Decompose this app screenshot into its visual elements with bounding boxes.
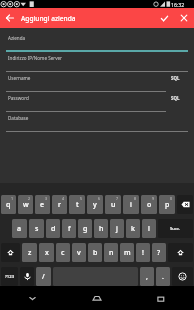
staticText: n [109, 248, 114, 258]
staticText: ?123 [5, 274, 15, 280]
staticText: 4 [62, 196, 65, 201]
staticText: Database [8, 115, 29, 121]
staticText: o [147, 200, 152, 210]
staticText: k [131, 224, 135, 234]
button[interactable]: y [87, 195, 103, 214]
staticText: / [42, 272, 45, 282]
staticText: 8 [134, 196, 137, 201]
button[interactable]: Indirizzo IP/Nome Server [0, 52, 194, 72]
staticText: Succ. [170, 226, 181, 232]
button[interactable]: Username [0, 72, 194, 92]
button[interactable]: i [123, 195, 139, 214]
staticText: Indirizzo IP/Nome Server [8, 55, 63, 61]
staticText: 1 [11, 196, 14, 201]
button[interactable]: t [69, 195, 85, 214]
button[interactable]: Home [64, 286, 129, 310]
button[interactable]: Password [0, 92, 194, 112]
button[interactable]: Backspace [177, 195, 193, 214]
staticText: Password [8, 95, 29, 101]
staticText: 2 [28, 196, 31, 201]
button[interactable]: k [126, 219, 140, 238]
button[interactable]: Database [0, 112, 194, 132]
staticText: z [28, 248, 32, 258]
staticText: Aggiungi azienda [21, 14, 76, 23]
staticText: h [99, 224, 104, 234]
staticText: q [6, 200, 11, 210]
button[interactable]: f [62, 219, 76, 238]
button[interactable]: , [140, 267, 154, 286]
button[interactable]: o [141, 195, 157, 214]
staticText: g [83, 224, 88, 234]
staticText: a [17, 224, 22, 234]
staticText: Username [8, 75, 31, 81]
button[interactable]: Shift [168, 243, 193, 262]
staticText: r [58, 200, 61, 210]
button[interactable]: j [110, 219, 124, 238]
button[interactable]: Cancel [174, 8, 194, 28]
button[interactable]: / [36, 267, 51, 286]
staticText: ? [157, 248, 161, 258]
staticText: 16:32 [171, 1, 185, 8]
staticText: 5 [80, 196, 83, 201]
button[interactable]: u [105, 195, 121, 214]
button[interactable]: Hide keyboard [0, 286, 64, 310]
staticText: Azienda [8, 35, 26, 41]
button[interactable]: a [12, 219, 27, 238]
staticText: c [61, 248, 65, 258]
staticText: 7 [116, 196, 119, 201]
staticText: v [77, 248, 81, 258]
staticText: e [40, 200, 45, 210]
button[interactable]: m [120, 243, 134, 262]
button[interactable]: Shift [1, 243, 20, 262]
button[interactable]: Back [0, 8, 20, 28]
button[interactable]: Voice input [20, 267, 34, 286]
staticText: 0 [170, 196, 173, 201]
button[interactable]: v [72, 243, 86, 262]
staticText: 3 [45, 196, 48, 201]
staticText: l [148, 224, 150, 234]
button[interactable]: ? [152, 243, 166, 262]
button[interactable]: . [156, 267, 170, 286]
staticText: 6 [98, 196, 101, 201]
staticText: i [130, 200, 132, 210]
staticText: y [93, 200, 97, 210]
button[interactable]: z [22, 243, 37, 262]
staticText: SQL [171, 95, 180, 101]
staticText: b [93, 248, 98, 258]
button[interactable]: g [78, 219, 92, 238]
button[interactable]: Recents [129, 286, 194, 310]
button[interactable]: Save [154, 8, 174, 28]
button[interactable]: e [35, 195, 50, 214]
button[interactable]: s [29, 219, 44, 238]
button[interactable]: w [18, 195, 33, 214]
button[interactable]: d [46, 219, 60, 238]
button[interactable]: p [159, 195, 175, 214]
button[interactable]: Emoji [172, 267, 193, 286]
staticText: d [51, 224, 56, 234]
button[interactable]: h [94, 219, 108, 238]
staticText: p [165, 200, 170, 210]
button[interactable]: Azienda [0, 32, 194, 52]
staticText: s [35, 224, 39, 234]
staticText: m [124, 248, 131, 258]
staticText: . [162, 272, 164, 282]
button[interactable]: q [1, 195, 16, 214]
staticText: j [116, 224, 118, 234]
button[interactable]: b [88, 243, 102, 262]
staticText: x [45, 248, 49, 258]
button[interactable]: n [104, 243, 118, 262]
button[interactable]: c [56, 243, 70, 262]
staticText: w [23, 200, 29, 210]
button[interactable]: l [142, 219, 156, 238]
button[interactable]: r [52, 195, 67, 214]
staticText: f [68, 224, 71, 234]
button[interactable]: Succ. [158, 219, 193, 238]
button[interactable]: x [39, 243, 54, 262]
button[interactable]: ?123 [1, 267, 18, 286]
staticText: SQL [171, 75, 180, 81]
button[interactable]: ! [136, 243, 150, 262]
staticText: 9 [152, 196, 155, 201]
staticText: , [146, 272, 148, 282]
staticText: u [111, 200, 116, 210]
